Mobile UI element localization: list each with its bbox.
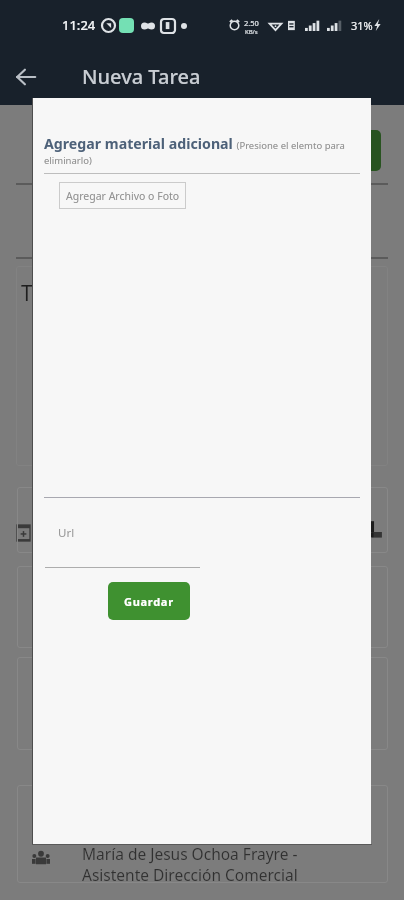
staticText: 31% [351,18,373,33]
staticText: T [21,279,33,308]
staticText: Guardar [124,594,174,609]
staticText: Url [58,525,75,541]
button[interactable]: Guardar [340,130,381,171]
staticText: Agregar Archivo o Foto [66,189,180,203]
button[interactable]: Back [0,51,52,103]
staticText: 11:24 [62,16,96,34]
staticText: KB/s [245,28,258,36]
button[interactable]: Guardar [108,582,190,620]
staticText: Nueva Tarea [82,63,201,90]
staticText: Asistente Dirección Comercial [82,864,298,885]
staticText: Agregar material adicional (Presione el … [44,134,360,167]
staticText: 2.50 [244,18,259,28]
staticText: María de Jesus Ochoa Frayre - [82,843,298,864]
button[interactable]: Agregar Archivo o Foto [59,182,186,209]
